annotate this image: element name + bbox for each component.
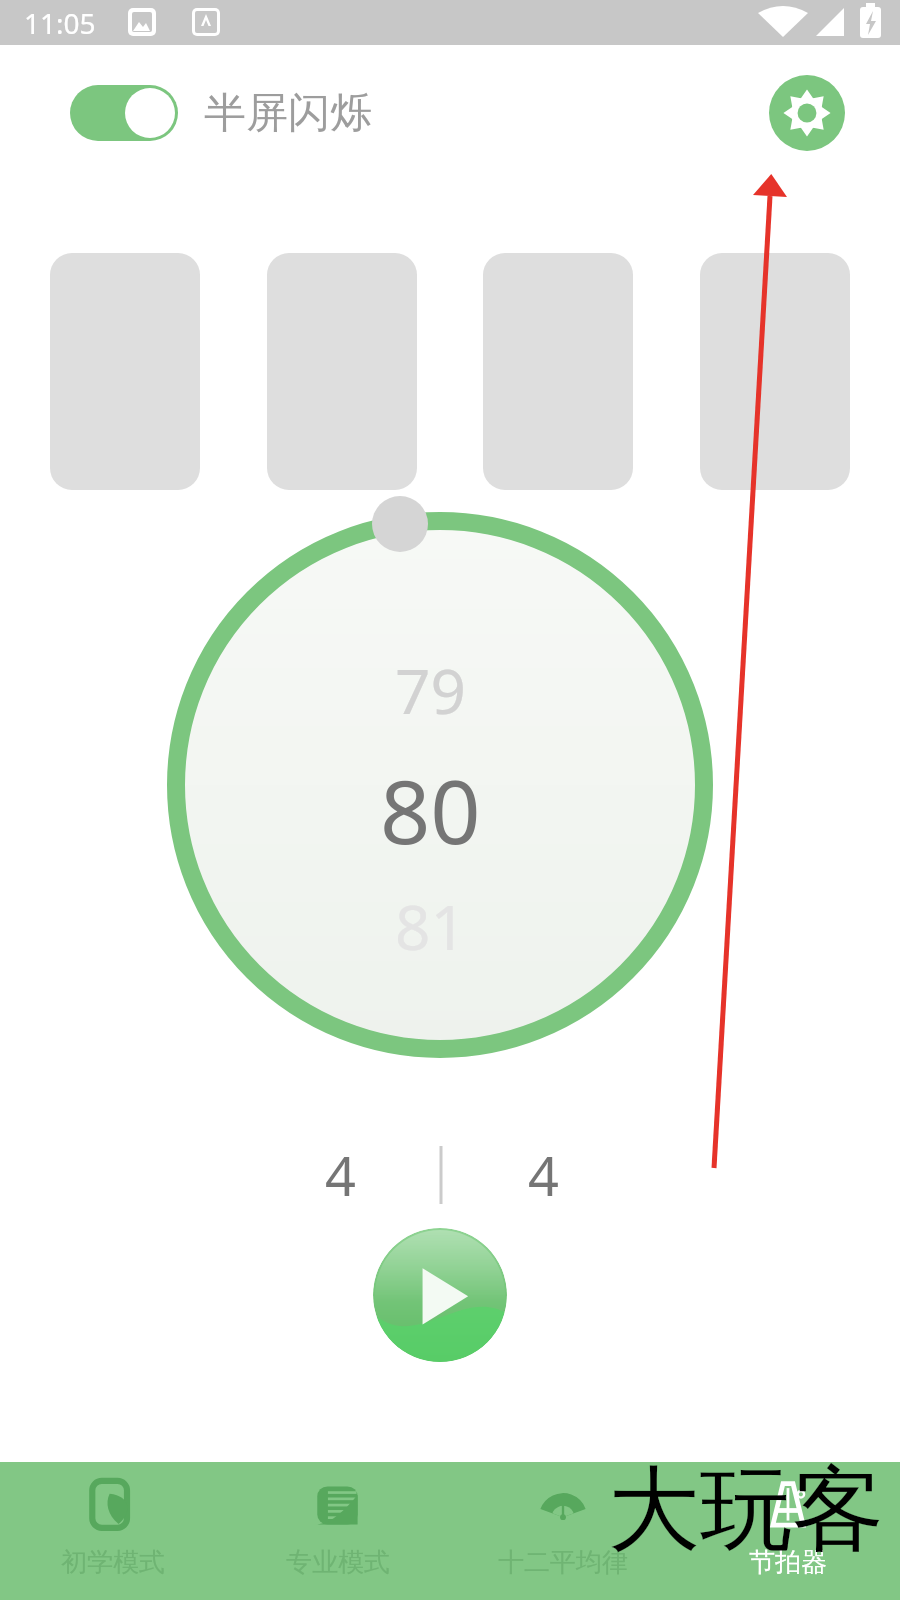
staticText: 4: [528, 1138, 559, 1212]
button[interactable]: 4: [483, 1130, 603, 1220]
button[interactable]: 初学模式: [0, 1462, 225, 1600]
button[interactable]: Play: [373, 1228, 507, 1362]
staticText: 初学模式: [61, 1546, 165, 1579]
button[interactable]: [483, 253, 633, 490]
button[interactable]: [700, 253, 850, 490]
staticText: 81: [395, 884, 466, 968]
staticText: 80: [380, 750, 481, 870]
staticText: 79: [395, 648, 466, 732]
button[interactable]: 十二平均律: [450, 1462, 675, 1600]
staticText: 大玩客: [608, 1452, 884, 1568]
button[interactable]: [50, 253, 200, 490]
staticText: 4: [325, 1138, 356, 1212]
staticText: 十二平均律: [498, 1546, 628, 1579]
button[interactable]: [267, 253, 417, 490]
button[interactable]: 专业模式: [225, 1462, 450, 1600]
staticText: 专业模式: [286, 1546, 390, 1579]
staticText: 节拍器: [749, 1546, 827, 1579]
staticText: 半屏闪烁: [204, 87, 372, 140]
button[interactable]: 节拍器: [675, 1462, 900, 1600]
button[interactable]: 半屏闪烁: [70, 85, 372, 141]
button[interactable]: Settings: [769, 75, 845, 151]
staticText: 11:05: [24, 4, 96, 42]
button[interactable]: 4: [280, 1130, 400, 1220]
